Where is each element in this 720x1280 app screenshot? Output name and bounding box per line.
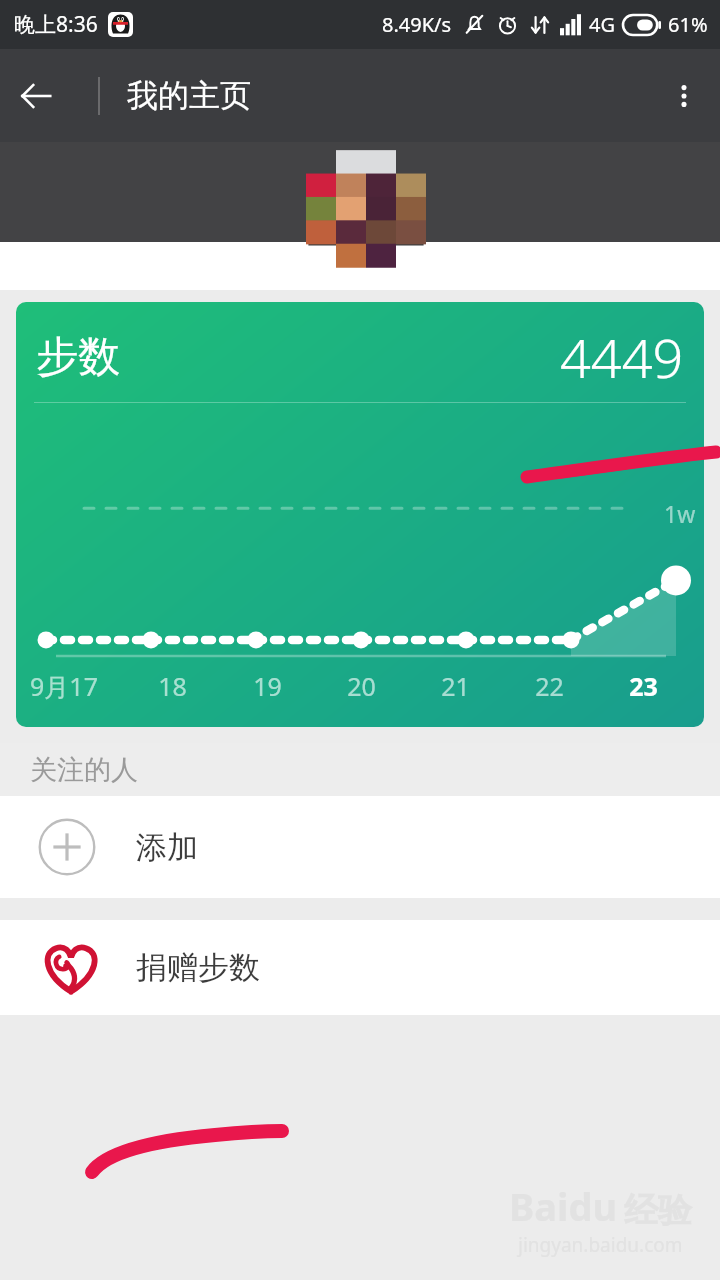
button[interactable]: Back [0, 60, 72, 132]
staticText: 4449 [560, 320, 684, 394]
button[interactable]: 步数 [16, 302, 704, 727]
staticText: 23 [629, 669, 658, 703]
button[interactable]: Profile photo [306, 142, 426, 290]
button[interactable]: 添加 [0, 796, 720, 898]
staticText: 晚上8:36 [14, 10, 98, 39]
staticText: 20 [347, 669, 376, 703]
button[interactable]: More options [648, 60, 720, 132]
staticText: 19 [253, 669, 282, 703]
staticText: 18 [158, 669, 187, 703]
staticText: 21 [441, 669, 470, 703]
staticText: 经验 [624, 1189, 692, 1232]
button[interactable]: 捐赠步数 [0, 920, 720, 1015]
staticText: Baidu [509, 1180, 618, 1232]
staticText: 捐赠步数 [136, 948, 260, 987]
staticText: 22 [535, 669, 564, 703]
staticText: jingyan.baidu.com [518, 1232, 683, 1258]
staticText: 1w [664, 498, 696, 529]
staticText: 关注的人 [30, 753, 138, 787]
staticText: 9月17 [30, 669, 98, 703]
staticText: 我的主页 [127, 76, 251, 115]
staticText: 添加 [136, 828, 198, 867]
staticText: 4G [589, 11, 615, 38]
staticText: 8.49K/s [382, 11, 452, 38]
staticText: 61% [668, 11, 708, 38]
staticText: 步数 [36, 331, 120, 384]
